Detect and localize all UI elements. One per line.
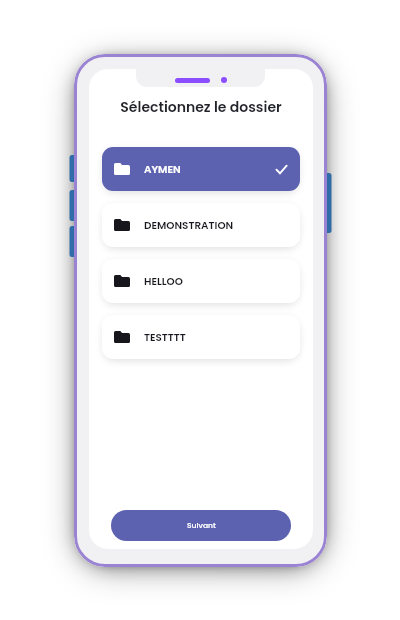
staticText: HELLOO <box>144 274 183 289</box>
button[interactable]: HELLOO <box>102 259 300 303</box>
staticText: Sélectionnez le dossier <box>89 97 313 117</box>
staticText: DEMONSTRATION <box>144 218 234 233</box>
button[interactable]: TESTTTT <box>102 315 300 359</box>
staticText: AYMEN <box>144 162 181 177</box>
button[interactable]: AYMEN <box>102 147 300 191</box>
other: Selected <box>276 165 287 174</box>
staticText: TESTTTT <box>144 330 186 345</box>
button[interactable]: DEMONSTRATION <box>102 203 300 247</box>
staticText: Suivant <box>187 520 216 531</box>
button[interactable]: Suivant <box>111 510 291 541</box>
